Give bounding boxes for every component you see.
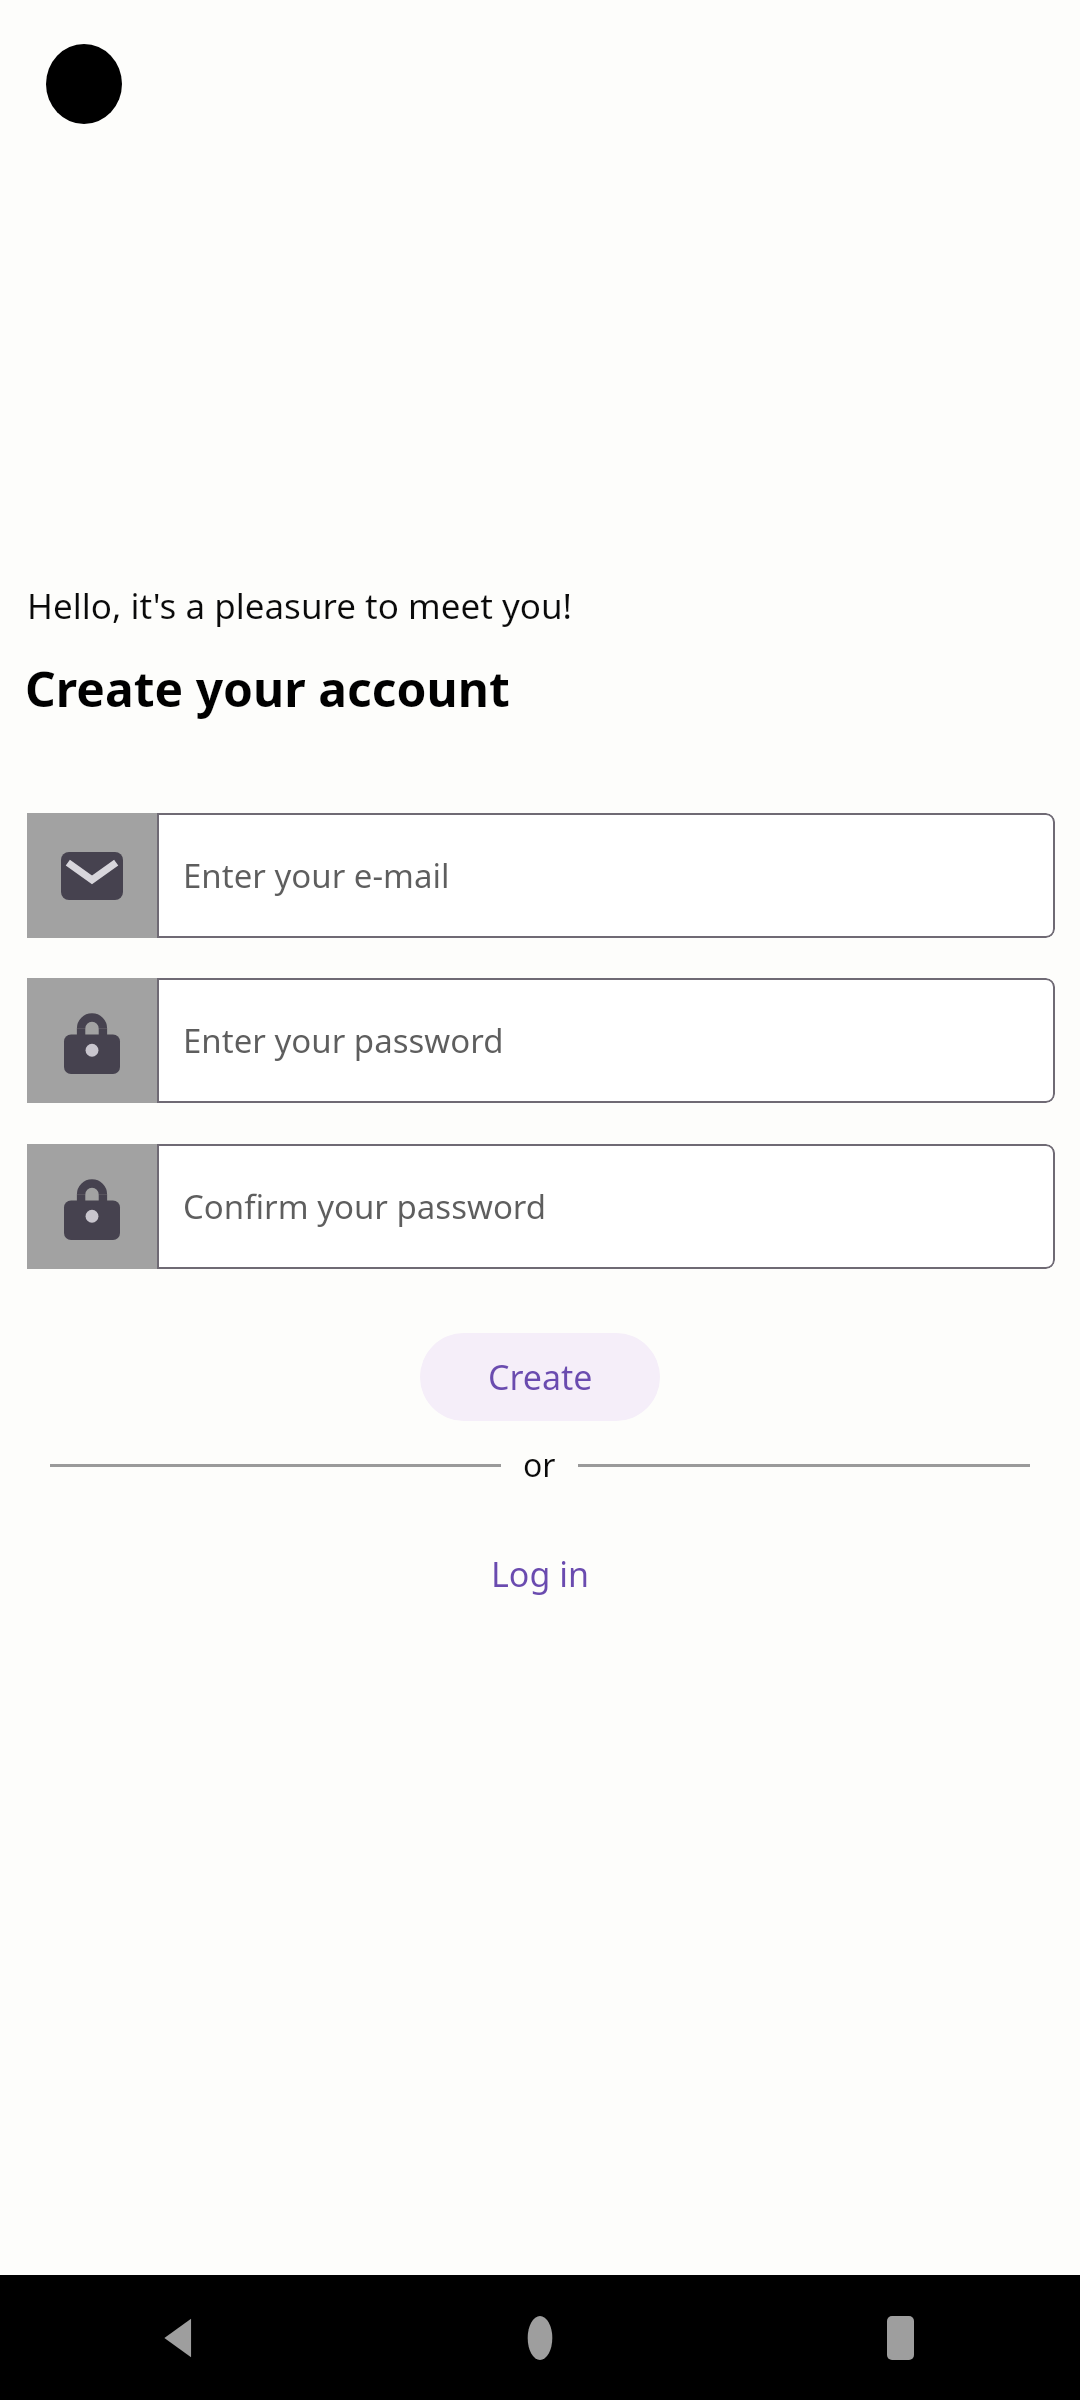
staticText: or	[523, 1443, 556, 1487]
staticText: Log in	[491, 1551, 589, 1597]
staticText: Create	[488, 1354, 593, 1400]
button[interactable]: Create	[420, 1333, 660, 1421]
staticText: Enter your e-mail	[183, 853, 450, 898]
button[interactable]: Home	[360, 2275, 720, 2400]
button[interactable]: Log in	[467, 1541, 613, 1607]
staticText: Confirm your password	[183, 1184, 547, 1229]
button[interactable]: Confirm your password	[27, 1144, 1055, 1269]
button[interactable]: Back	[0, 2275, 360, 2400]
button[interactable]: Enter your e-mail	[27, 813, 1055, 938]
staticText: Enter your password	[183, 1018, 504, 1063]
staticText: Hello, it's a pleasure to meet you!	[27, 582, 573, 630]
staticText: Create your account	[25, 656, 510, 721]
button[interactable]: Recent apps	[720, 2275, 1080, 2400]
button[interactable]: Enter your password	[27, 978, 1055, 1103]
